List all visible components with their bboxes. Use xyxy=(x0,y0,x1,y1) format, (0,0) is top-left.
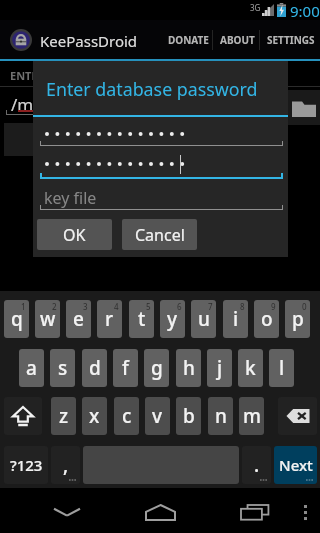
staticText: k xyxy=(245,355,256,381)
staticText: g xyxy=(151,355,163,381)
staticText: e xyxy=(73,306,84,332)
staticText: d xyxy=(89,355,101,381)
staticText: u xyxy=(198,306,210,332)
button[interactable]: Delete xyxy=(278,397,317,435)
staticText: 4 xyxy=(114,301,119,312)
button[interactable]: KeePassDroid home xyxy=(10,29,32,51)
staticText: r xyxy=(105,306,114,332)
button[interactable]: Open xyxy=(4,123,159,156)
staticText: . xyxy=(254,452,260,478)
staticText: DONATE xyxy=(168,33,209,47)
button[interactable]: k xyxy=(238,349,263,387)
button[interactable]: Cancel xyxy=(122,219,197,250)
staticText: z xyxy=(59,403,69,429)
button[interactable]: w xyxy=(35,300,60,338)
button[interactable]: x xyxy=(82,397,107,435)
button[interactable]: ABOUT xyxy=(216,20,259,60)
button[interactable]: Home xyxy=(135,493,185,531)
button[interactable]: n xyxy=(208,397,233,435)
button[interactable]: SETTINGS xyxy=(263,20,319,60)
staticText: 1 xyxy=(21,301,26,312)
staticText: ABOUT xyxy=(220,33,255,47)
staticText: h xyxy=(183,355,195,381)
staticText: x xyxy=(89,403,100,429)
button[interactable]: a xyxy=(19,349,44,387)
staticText: i xyxy=(233,306,239,332)
button[interactable]: Hide keyboard xyxy=(42,493,92,531)
button[interactable]: OK xyxy=(37,219,112,250)
staticText: OK xyxy=(63,224,86,246)
button[interactable]: p xyxy=(285,300,310,338)
button[interactable]: m xyxy=(239,397,264,435)
button[interactable]: Browse xyxy=(288,90,320,125)
button[interactable]: ?123 xyxy=(4,446,48,484)
staticText: SETTINGS xyxy=(267,33,315,47)
staticText: o xyxy=(261,306,273,332)
button[interactable]: d xyxy=(82,349,107,387)
button[interactable]: . xyxy=(242,446,271,484)
staticText: Enter database password xyxy=(46,77,258,101)
staticText: , xyxy=(63,452,69,478)
staticText: n xyxy=(215,403,227,429)
staticText: 3G xyxy=(250,2,261,13)
staticText: ENTER PASSWORD xyxy=(10,68,109,83)
button[interactable]: r xyxy=(97,300,122,338)
button[interactable]: c xyxy=(114,397,139,435)
staticText: Open xyxy=(61,129,103,151)
staticText: c xyxy=(122,403,132,429)
staticText: s xyxy=(58,355,68,381)
staticText: 9:00 xyxy=(290,1,320,21)
staticText: ?123 xyxy=(10,455,43,475)
staticText: KeePassDroid xyxy=(40,31,138,51)
staticText: t xyxy=(138,306,146,332)
button[interactable]: More options xyxy=(294,493,316,531)
staticText: 7 xyxy=(208,301,213,312)
staticText: 6 xyxy=(177,301,182,312)
button[interactable]: g xyxy=(144,349,169,387)
staticText: 2 xyxy=(52,301,57,312)
button[interactable]: f xyxy=(113,349,138,387)
staticText: w xyxy=(40,306,56,332)
staticText: j xyxy=(217,355,223,381)
button[interactable]: q xyxy=(4,300,29,338)
staticText: Next xyxy=(279,455,313,475)
button[interactable]: h xyxy=(176,349,201,387)
staticText: key file xyxy=(44,187,97,209)
button[interactable]: v xyxy=(145,397,170,435)
button[interactable]: b xyxy=(176,397,201,435)
staticText: f xyxy=(122,355,129,381)
staticText: y xyxy=(167,306,178,332)
button[interactable]: z xyxy=(51,397,76,435)
staticText: 0 xyxy=(302,301,307,312)
staticText: /mnt/sdcard/keepass.kdb xyxy=(11,93,216,116)
button[interactable]: t xyxy=(129,300,154,338)
staticText: a xyxy=(26,355,37,381)
staticText: p xyxy=(292,306,304,332)
staticText: 8 xyxy=(240,301,245,312)
button[interactable]: i xyxy=(223,300,248,338)
button[interactable]: DONATE xyxy=(164,20,213,60)
staticText: b xyxy=(183,403,195,429)
button[interactable]: o xyxy=(254,300,279,338)
staticText: 3 xyxy=(83,301,88,312)
button[interactable]: l xyxy=(269,349,294,387)
button[interactable]: y xyxy=(160,300,185,338)
staticText: 9 xyxy=(271,301,276,312)
button[interactable]: Shift xyxy=(4,397,42,435)
button[interactable]: u xyxy=(191,300,216,338)
staticText: Cancel xyxy=(135,224,185,246)
staticText: 5 xyxy=(146,301,151,312)
button[interactable]: , xyxy=(51,446,80,484)
staticText: m xyxy=(243,403,261,429)
button[interactable]: j xyxy=(207,349,232,387)
button[interactable]: e xyxy=(66,300,91,338)
button[interactable]: s xyxy=(50,349,75,387)
staticText: v xyxy=(152,403,163,429)
staticText: l xyxy=(279,355,285,381)
button[interactable]: Recent apps xyxy=(229,493,279,531)
staticText: q xyxy=(11,306,23,332)
button[interactable]: Next xyxy=(274,446,317,484)
